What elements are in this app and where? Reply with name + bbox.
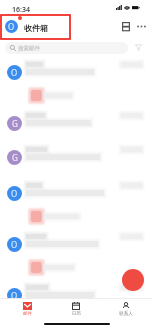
staticText: G <box>12 118 18 129</box>
button[interactable]: G <box>0 143 152 179</box>
staticText: O <box>11 67 18 78</box>
staticText: O <box>11 239 18 250</box>
button[interactable]: O <box>0 281 152 317</box>
button[interactable]: Filter <box>130 39 146 55</box>
button[interactable]: Compose mail <box>122 269 144 291</box>
staticText: 搜索邮件 <box>18 45 40 52</box>
staticText: O <box>11 188 18 199</box>
staticText: 日历 <box>72 311 81 317</box>
button[interactable]: 邮件 <box>4 299 50 319</box>
button[interactable]: G <box>0 109 152 143</box>
staticText: 联系人 <box>119 311 133 317</box>
button[interactable]: 联系人 <box>103 299 149 319</box>
staticText: O <box>11 290 18 301</box>
button[interactable]: O <box>5 16 48 33</box>
button[interactable]: O <box>0 230 152 281</box>
button[interactable]: More options <box>133 18 149 34</box>
staticText: G <box>12 152 18 163</box>
button[interactable]: Group by conversation <box>118 18 134 34</box>
staticText: 邮件 <box>23 311 32 317</box>
staticText: 16:34 <box>12 5 30 15</box>
staticText: 收件箱 <box>24 23 48 33</box>
staticText: O <box>8 21 15 32</box>
button[interactable]: 搜索邮件 <box>5 42 128 54</box>
button[interactable]: O <box>0 179 152 230</box>
button[interactable]: 日历 <box>53 299 99 319</box>
button[interactable]: O <box>0 58 152 109</box>
